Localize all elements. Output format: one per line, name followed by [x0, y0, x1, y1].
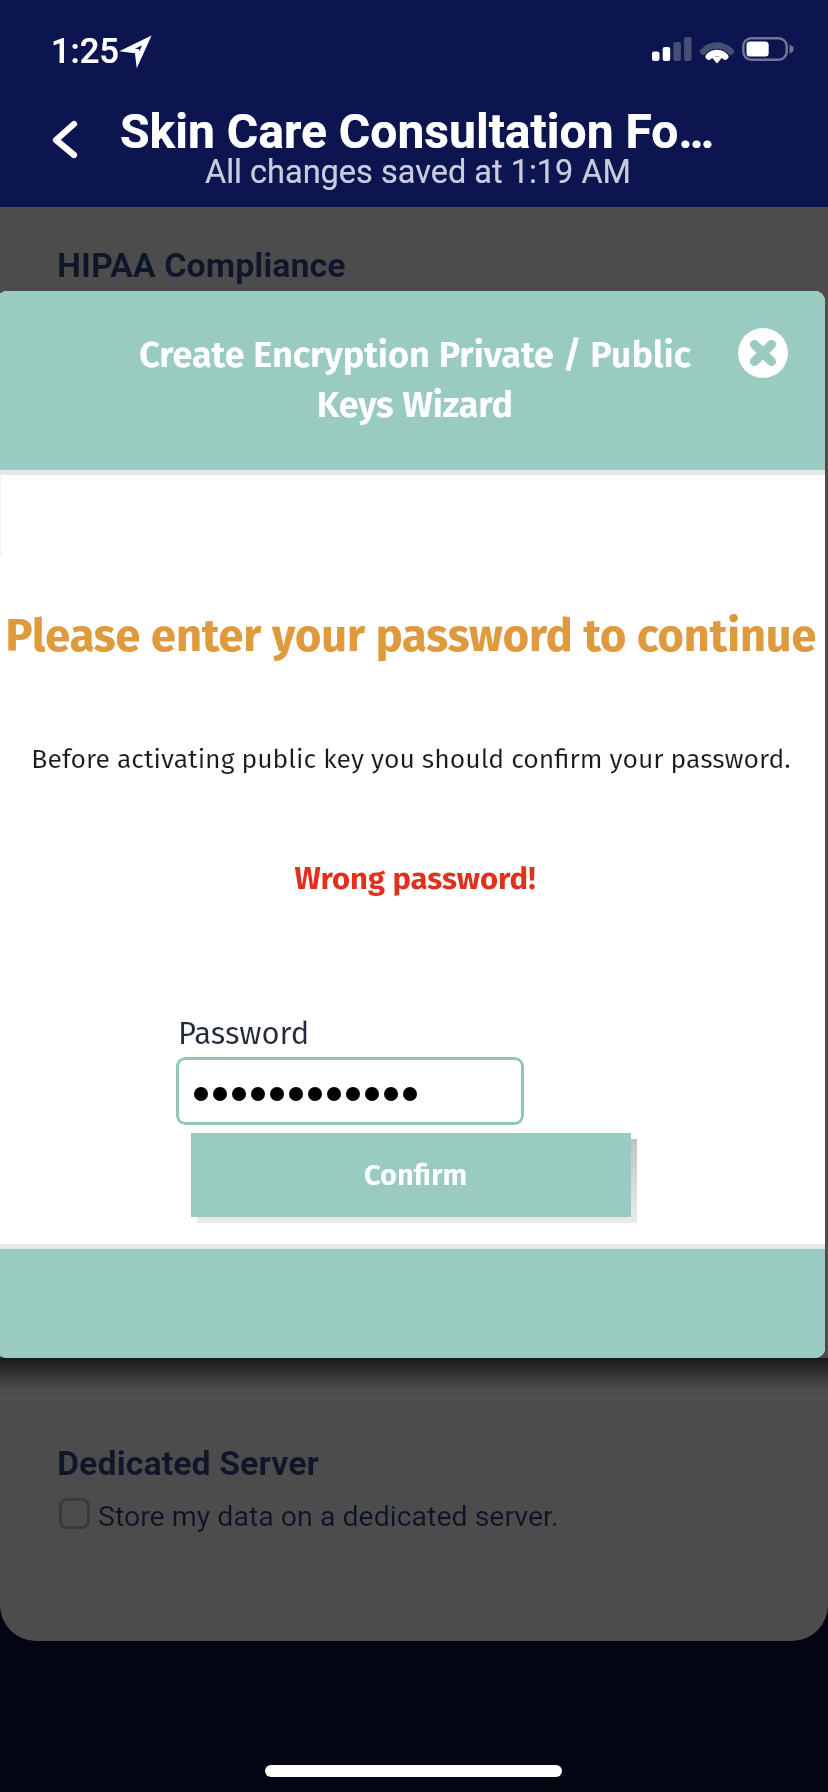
- staticText: Before activating public key you should …: [0, 743, 825, 775]
- button[interactable]: Store my data on a dedicated server.: [59, 1497, 559, 1530]
- staticText: Password: [178, 1015, 310, 1052]
- button[interactable]: Confirm: [191, 1133, 631, 1217]
- staticText: Skin Care Consultation Fo…: [120, 103, 714, 159]
- staticText: 1:25: [51, 31, 119, 71]
- staticText: Dedicated Server: [57, 1443, 319, 1483]
- staticText: Please enter your password to continue: [0, 609, 825, 663]
- staticText: Confirm: [364, 1158, 468, 1193]
- staticText: Create Encryption Private / Public Keys …: [135, 333, 695, 426]
- staticText: Wrong password!: [1, 860, 825, 897]
- staticText: HIPAA Compliance: [57, 245, 346, 285]
- button[interactable]: Close: [738, 328, 788, 378]
- staticText: All changes saved at 1:19 AM: [4, 153, 828, 191]
- button[interactable]: [176, 1057, 524, 1125]
- staticText: Store my data on a dedicated server.: [98, 1500, 559, 1533]
- button[interactable]: Back: [32, 106, 98, 172]
